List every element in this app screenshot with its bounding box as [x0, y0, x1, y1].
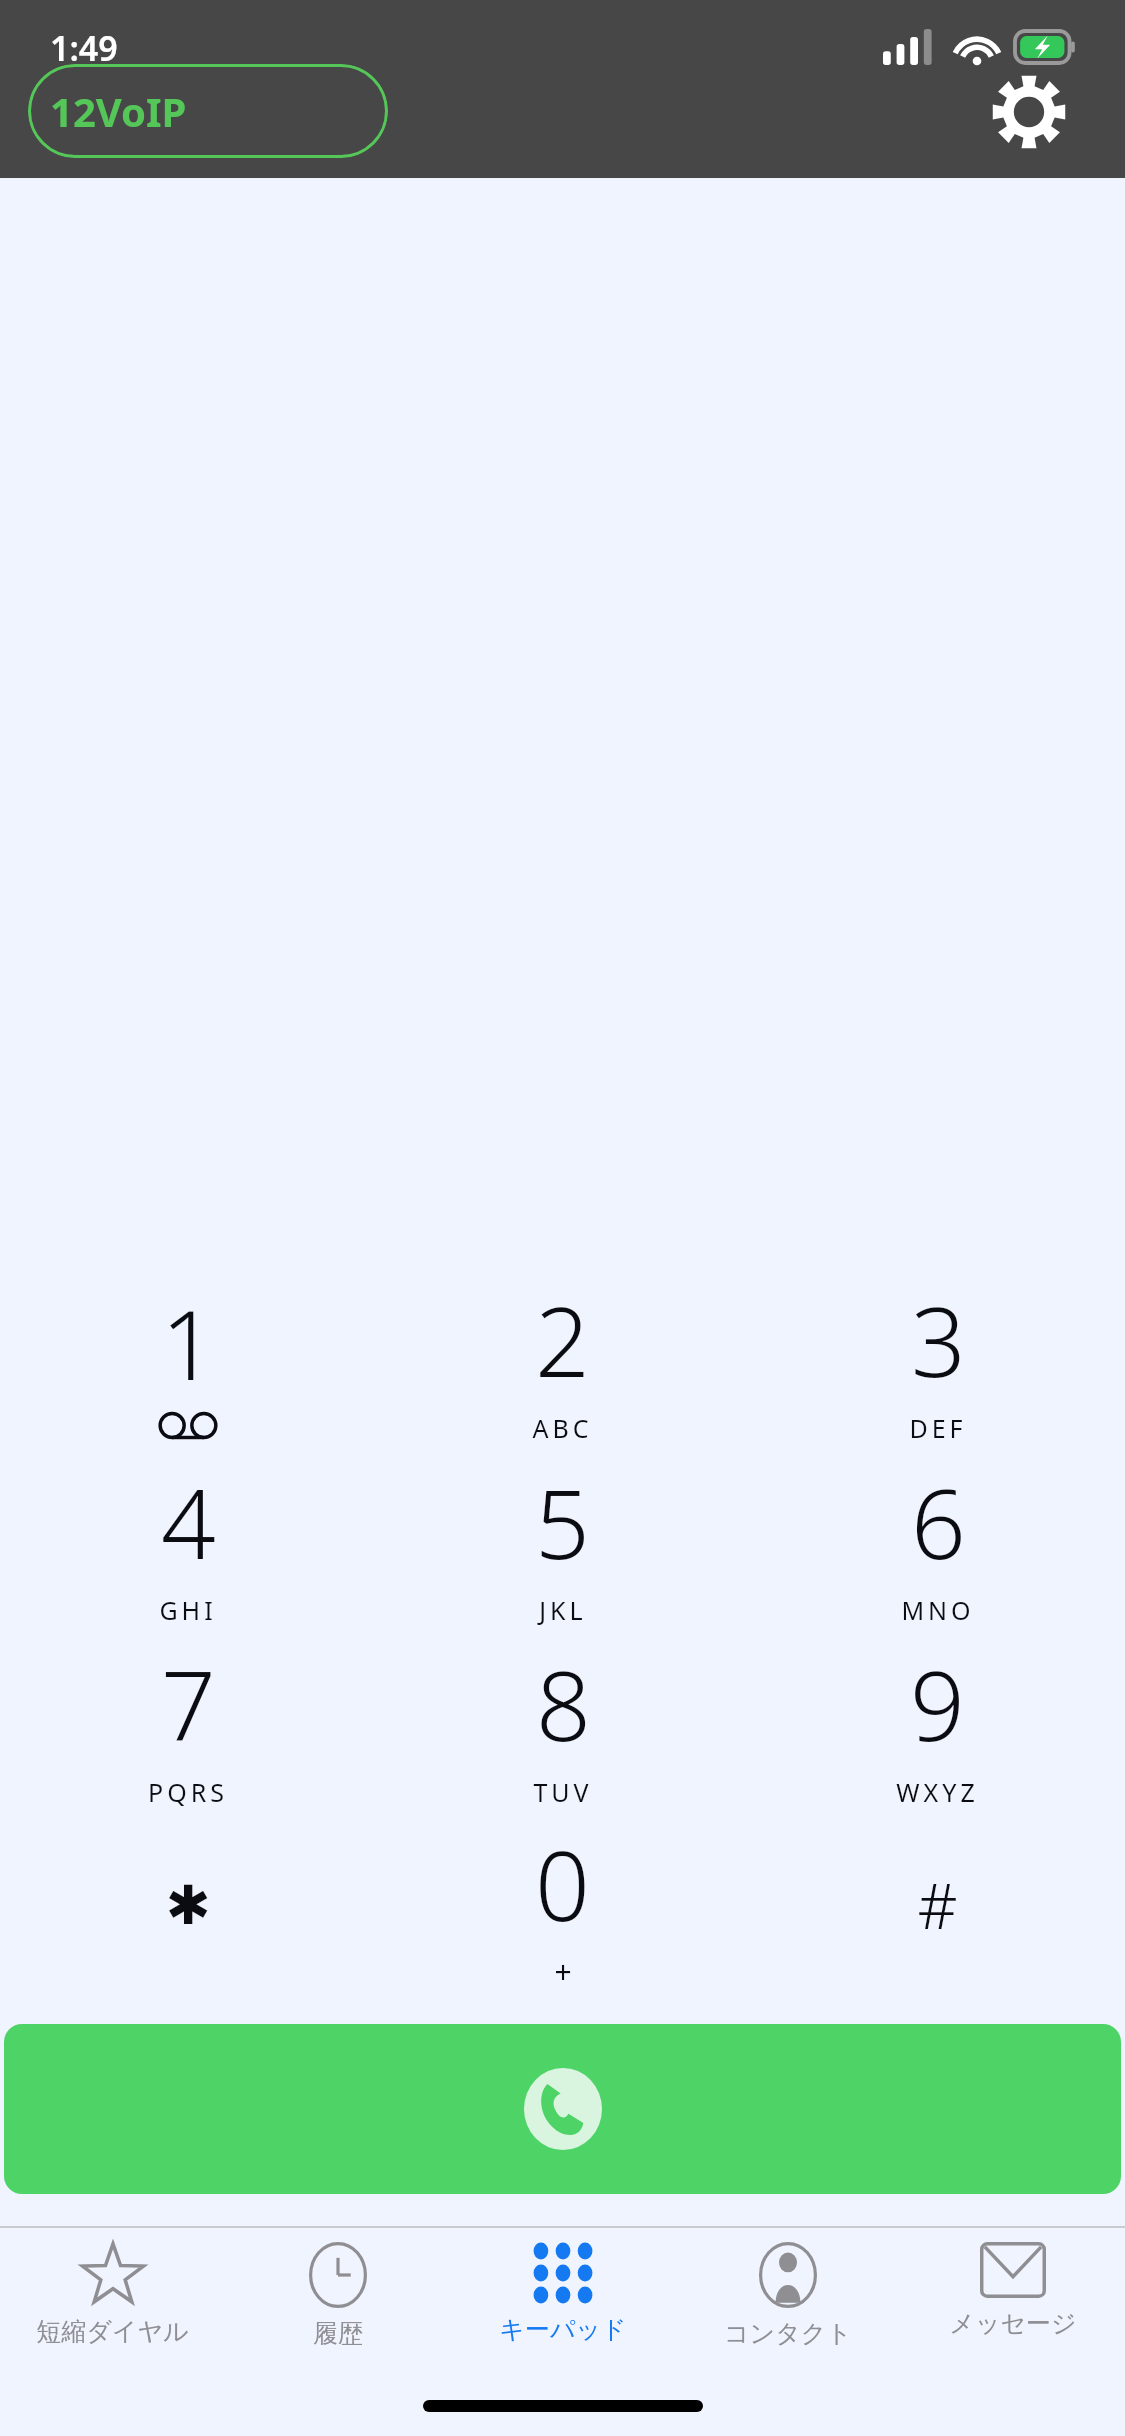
staticText: 9 — [910, 1638, 965, 1769]
button[interactable]: 2 — [375, 1268, 750, 1450]
staticText: MNO — [901, 1593, 975, 1627]
staticText: 0 — [535, 1818, 590, 1949]
button[interactable]: 5 — [375, 1450, 750, 1632]
staticText: 7 — [161, 1638, 216, 1769]
staticText: 3 — [911, 1274, 966, 1405]
button[interactable]: Settings — [981, 64, 1077, 160]
button[interactable]: コンタクト — [675, 2228, 900, 2388]
staticText: DEF — [909, 1411, 967, 1445]
button[interactable]: 0 — [375, 1814, 750, 1996]
staticText: 4 — [161, 1456, 216, 1587]
staticText: TUV — [533, 1775, 593, 1809]
staticText: 1 — [161, 1277, 216, 1408]
staticText: ✱ — [165, 1874, 211, 1937]
button[interactable]: ✱ — [0, 1814, 375, 1996]
button[interactable]: 3 — [750, 1268, 1125, 1450]
button[interactable]: 7 — [0, 1632, 375, 1814]
staticText: # — [917, 1863, 958, 1947]
button[interactable]: 1 — [0, 1268, 375, 1450]
button[interactable]: 履歴 — [225, 2228, 450, 2388]
button[interactable]: キーパッド — [450, 2228, 675, 2388]
staticText: PQRS — [148, 1775, 228, 1809]
button[interactable]: 4 — [0, 1450, 375, 1632]
staticText: 6 — [911, 1456, 966, 1587]
button[interactable]: Call — [4, 2024, 1121, 2194]
staticText: コンタクト — [724, 2318, 852, 2349]
staticText: 12VoIP m██████a — [50, 84, 388, 138]
staticText: 1:49 — [50, 25, 118, 71]
staticText: 8 — [536, 1638, 591, 1769]
staticText: JKL — [539, 1593, 587, 1627]
staticText: メッセージ — [949, 2308, 1077, 2339]
staticText: 2 — [535, 1274, 590, 1405]
button[interactable]: 6 — [750, 1450, 1125, 1632]
staticText: 短縮ダイヤル — [36, 2316, 189, 2347]
staticText: GHI — [159, 1593, 217, 1627]
staticText: + — [554, 1951, 572, 1992]
button[interactable]: 8 — [375, 1632, 750, 1814]
button[interactable]: # — [750, 1814, 1125, 1996]
staticText: 履歴 — [313, 2318, 363, 2349]
button[interactable]: メッセージ — [900, 2228, 1125, 2388]
staticText: ABC — [532, 1411, 593, 1445]
button[interactable]: 短縮ダイヤル — [0, 2228, 225, 2388]
button[interactable]: 12VoIP m██████a — [28, 64, 388, 158]
staticText: WXYZ — [896, 1775, 979, 1809]
button[interactable]: 9 — [750, 1632, 1125, 1814]
staticText: 5 — [535, 1456, 590, 1587]
staticText: キーパッド — [499, 2314, 627, 2345]
